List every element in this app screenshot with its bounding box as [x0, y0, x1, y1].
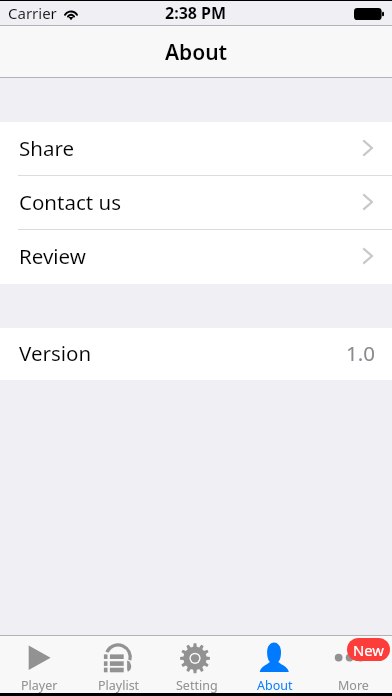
button[interactable]: Review [0, 230, 392, 284]
staticText: More [338, 677, 369, 694]
staticText: Carrier [8, 3, 57, 23]
button[interactable]: About [236, 636, 314, 693]
staticText: Version [19, 339, 92, 367]
button[interactable]: Version [0, 328, 392, 380]
staticText: Player [21, 677, 58, 694]
staticText: About [165, 38, 228, 67]
staticText: Setting [176, 677, 218, 694]
staticText: 2:38 PM [165, 2, 227, 24]
staticText: Review [19, 242, 86, 270]
staticText: Contact us [19, 188, 121, 216]
button[interactable]: Contact us [0, 176, 392, 230]
button[interactable]: Player [0, 636, 79, 693]
button[interactable]: Share [0, 122, 392, 176]
staticText: 1.0 [346, 339, 375, 367]
button[interactable]: Playlist [79, 636, 158, 693]
staticText: New [353, 640, 384, 660]
staticText: Share [19, 134, 75, 162]
button[interactable]: Setting [158, 636, 236, 693]
staticText: About [257, 677, 293, 694]
staticText: Playlist [98, 677, 140, 694]
button[interactable]: More [314, 636, 392, 693]
